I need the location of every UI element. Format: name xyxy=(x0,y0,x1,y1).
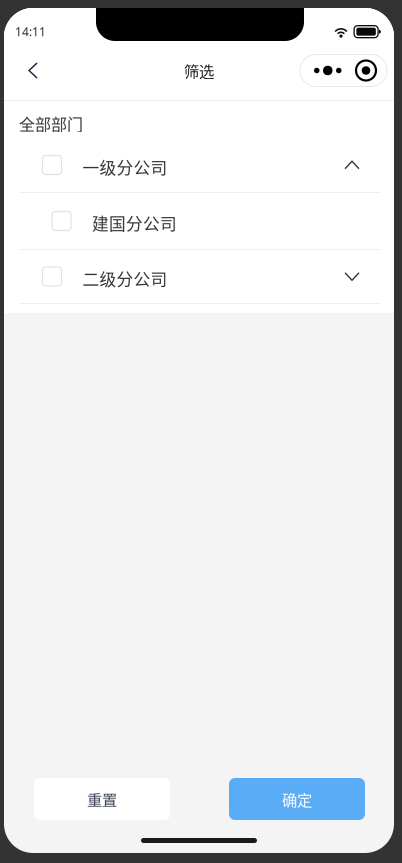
button[interactable]: 建国分公司 xyxy=(4,193,394,249)
staticText: 14:11 xyxy=(15,23,46,40)
button[interactable]: 重置 xyxy=(34,778,170,820)
staticText: 全部部门 xyxy=(19,112,83,135)
staticText: 确定 xyxy=(282,788,312,810)
button[interactable]: 一级分公司 xyxy=(4,138,394,192)
button[interactable]: Back xyxy=(20,51,46,89)
button[interactable]: More options xyxy=(300,54,387,86)
staticText: 建国分公司 xyxy=(92,211,177,235)
button[interactable]: 确定 xyxy=(229,778,365,820)
staticText: 重置 xyxy=(87,788,117,810)
staticText: 一级分公司 xyxy=(82,155,167,179)
button[interactable]: 二级分公司 xyxy=(4,250,394,303)
staticText: 二级分公司 xyxy=(82,266,167,290)
staticText: 筛选 xyxy=(184,59,214,82)
